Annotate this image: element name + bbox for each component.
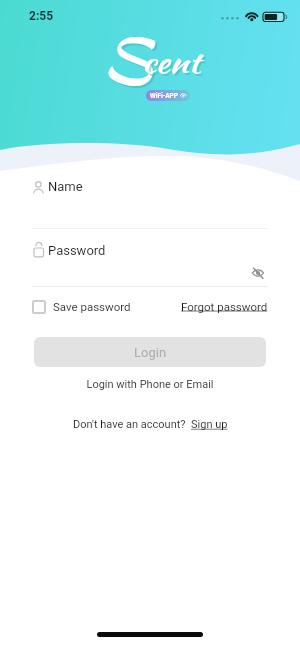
staticText: Don't have an account?: [73, 418, 191, 431]
staticText: Save password: [53, 300, 131, 313]
staticText: S: [103, 20, 153, 104]
staticText: S: [101, 18, 151, 102]
button[interactable]: Sign up: [191, 418, 228, 431]
button[interactable]: Password: [28, 237, 272, 263]
staticText: 2:55: [29, 9, 54, 23]
button[interactable]: Name: [28, 174, 272, 200]
button[interactable]: Forgot password: [181, 300, 268, 313]
staticText: Login with Phone or Email: [86, 378, 214, 391]
staticText: WiFi-APP: [150, 92, 178, 100]
button[interactable]: [32, 300, 46, 314]
staticText: Name: [48, 179, 83, 194]
button[interactable]: Login with Phone or Email: [0, 378, 300, 391]
staticText: cent: [141, 42, 200, 84]
staticText: cent: [143, 44, 202, 86]
staticText: Password: [48, 243, 106, 258]
staticText: Login: [134, 345, 167, 360]
button[interactable]: [248, 263, 268, 283]
button[interactable]: Login: [34, 337, 266, 367]
